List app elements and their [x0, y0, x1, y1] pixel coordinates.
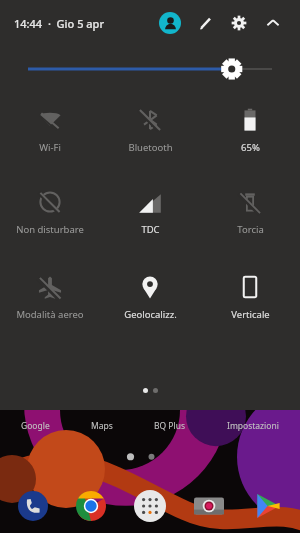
button[interactable]: All apps [134, 490, 166, 522]
staticText: 14:44 · Gio 5 apr [14, 16, 105, 31]
staticText: TDC [141, 223, 160, 236]
button[interactable]: Edit [192, 10, 218, 36]
button[interactable]: Torcia [200, 190, 300, 236]
button[interactable]: Verticale [200, 275, 300, 321]
staticText: Wi-Fi [39, 141, 61, 154]
button[interactable]: TDC [100, 190, 200, 236]
button[interactable]: 65% [200, 108, 300, 154]
button[interactable]: Brightness [28, 46, 272, 92]
staticText: Non disturbare [16, 223, 84, 236]
button[interactable]: Chrome [76, 491, 106, 521]
button[interactable]: Phone [18, 491, 48, 521]
button[interactable]: Play Store [252, 491, 282, 521]
staticText: Torcia [237, 223, 264, 236]
button[interactable]: User [159, 12, 181, 34]
button[interactable]: Wi-Fi [0, 108, 100, 154]
button[interactable]: Non disturbare [0, 190, 100, 236]
button[interactable]: Modalità aereo [0, 275, 100, 321]
button[interactable]: Maps [91, 420, 113, 432]
button[interactable]: Bluetooth [100, 108, 200, 154]
button[interactable]: Impostazioni [227, 420, 279, 432]
staticText: Modalità aereo [16, 308, 84, 321]
staticText: 65% [241, 141, 260, 154]
button[interactable]: BQ Plus [154, 420, 186, 432]
staticText: Verticale [231, 308, 270, 321]
button[interactable]: Collapse [260, 10, 286, 36]
staticText: Bluetooth [128, 141, 173, 154]
button[interactable]: Camera [194, 491, 224, 521]
button[interactable]: Google [21, 420, 50, 432]
button[interactable]: Settings [226, 10, 252, 36]
staticText: Geolocalizz. [124, 308, 177, 321]
button[interactable]: Geolocalizz. [100, 275, 200, 321]
